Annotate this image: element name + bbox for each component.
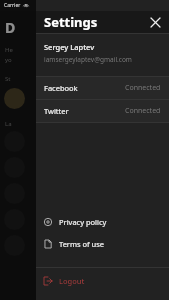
staticText: Sergey Laptev xyxy=(44,42,95,52)
button[interactable]: Privacy policy xyxy=(36,211,169,233)
button[interactable]: Logout xyxy=(36,268,169,294)
button[interactable]: Facebook xyxy=(36,77,169,99)
staticText: D xyxy=(5,18,16,37)
staticText: St xyxy=(5,75,11,83)
staticText: Settings xyxy=(44,13,98,31)
staticText: Privacy policy xyxy=(59,217,107,227)
staticText: Logout xyxy=(59,276,85,286)
staticText: He xyxy=(5,46,13,54)
button[interactable]: Sergey Laptev xyxy=(36,34,169,72)
button[interactable]: Terms of use xyxy=(36,233,169,255)
staticText: yo xyxy=(5,56,12,64)
staticText: Carrier xyxy=(4,2,21,9)
staticText: La xyxy=(5,120,12,128)
staticText: Terms of use xyxy=(59,239,105,249)
staticText: Facebook xyxy=(44,83,78,93)
button[interactable]: Close settings xyxy=(148,15,163,30)
staticText: Connected xyxy=(125,106,161,116)
button[interactable]: Twitter xyxy=(36,100,169,122)
staticText: iamsergeylaptev@gmail.com xyxy=(44,55,132,64)
button[interactable]: Settings xyxy=(36,11,169,33)
staticText: Connected xyxy=(125,83,161,93)
staticText: Twitter xyxy=(44,106,69,116)
